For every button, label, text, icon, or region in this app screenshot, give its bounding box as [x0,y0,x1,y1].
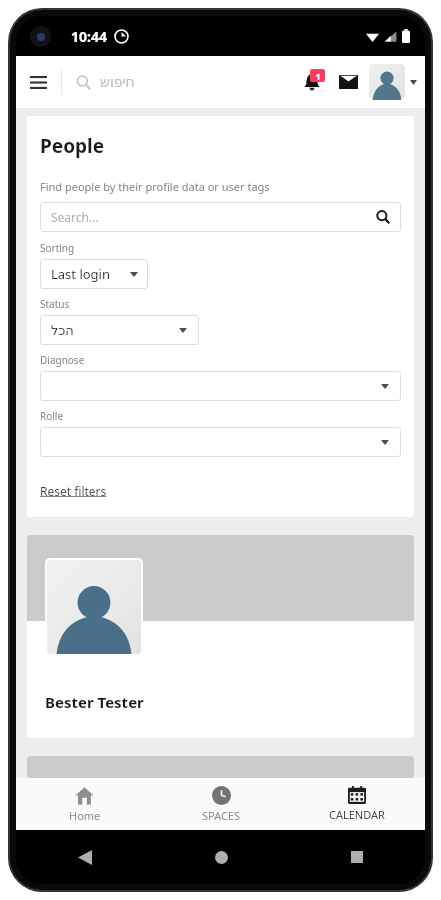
button[interactable]: Last login [40,259,148,289]
button[interactable]: Back [16,830,153,884]
staticText: People [40,133,105,159]
button[interactable]: Home [153,830,289,884]
staticText: Reset filters [40,483,107,499]
staticText: SPACES [202,808,241,823]
staticText: Search... [51,209,376,225]
button[interactable]: SPACES [153,778,289,830]
button[interactable]: Bester Tester [27,535,414,738]
staticText: Home [69,808,101,823]
staticText: חיפוש [100,74,135,90]
staticText: CALENDAR [329,807,385,822]
staticText: Status [40,297,70,311]
button[interactable]: CALENDAR [289,778,425,830]
staticText: Last login [51,265,130,283]
button[interactable] [40,371,401,401]
staticText: 1 [315,70,321,82]
staticText: Rolle [40,409,64,423]
button[interactable]: הכל [40,315,199,345]
staticText: Diagnose [40,353,85,367]
button[interactable]: Notifications, 1 new [294,65,330,99]
button[interactable]: Recent apps [289,830,425,884]
button[interactable] [40,427,401,457]
staticText: Find people by their profile data or use… [40,179,270,194]
staticText: Sorting [40,241,75,255]
button[interactable]: Search... [40,202,401,232]
button[interactable]: Open navigation menu [16,64,61,101]
button[interactable]: Account menu [369,64,425,100]
staticText: הכל [51,323,179,338]
staticText: Bester Tester [45,692,144,712]
button[interactable]: Reset filters [40,483,107,499]
button[interactable]: חיפוש [62,56,294,108]
button[interactable]: Messages [330,67,367,97]
staticText: 10:44 [71,27,107,46]
button[interactable]: Home [16,778,153,830]
